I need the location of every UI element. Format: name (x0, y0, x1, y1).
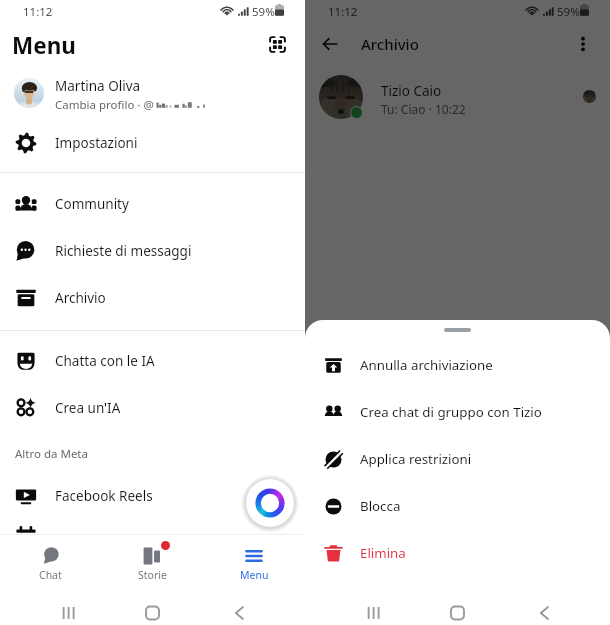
staticText: Crea chat di gruppo con Tizio (360, 403, 542, 421)
staticText: Crea un'IA (55, 399, 121, 417)
staticText: Community (55, 195, 129, 213)
staticText: Menu (12, 30, 76, 61)
staticText: 11:12 (23, 4, 53, 20)
button[interactable]: Scan QR code (264, 31, 291, 58)
button[interactable]: Meta AI (244, 477, 296, 529)
staticText: Annulla archiviazione (360, 356, 493, 374)
button[interactable]: Community (0, 187, 305, 221)
button[interactable]: Archivio (0, 281, 305, 315)
staticText: Chatta con le IA (55, 352, 155, 370)
button[interactable]: Menu (203, 535, 305, 592)
button[interactable]: Applica restrizioni (305, 441, 610, 477)
button[interactable]: Crea un'IA (0, 391, 305, 425)
staticText: Menu (240, 568, 269, 582)
button[interactable]: Crea chat di gruppo con Tizio (305, 394, 610, 430)
button[interactable]: Chatta con le IA (0, 344, 305, 378)
button[interactable]: Facebook Reels (0, 479, 305, 513)
staticText: Altro da Meta (15, 446, 88, 462)
staticText: Applica restrizioni (360, 450, 472, 468)
staticText: Facebook Reels (55, 487, 153, 505)
staticText: 11:12 (328, 4, 358, 20)
button[interactable]: Blocca (305, 488, 610, 524)
button[interactable]: More options (572, 33, 594, 55)
button[interactable]: Richieste di messaggi (0, 234, 305, 268)
staticText: Martina Oliva (55, 77, 141, 95)
staticText: Cambia profilo · @ (55, 97, 154, 112)
staticText: Impostazioni (55, 134, 138, 152)
button[interactable]: Chat (0, 535, 101, 592)
button[interactable] (305, 0, 610, 625)
staticText: Elimina (360, 544, 406, 562)
button[interactable]: Elimina (305, 535, 610, 571)
button[interactable]: Impostazioni (0, 126, 305, 160)
staticText: Archivio (361, 34, 419, 54)
button[interactable]: Back (321, 35, 339, 53)
staticText: Chat (39, 568, 62, 582)
staticText: 59% (252, 4, 275, 20)
staticText: Blocca (360, 497, 401, 515)
staticText: Storie (138, 568, 167, 582)
staticText: 59% (557, 4, 580, 20)
button[interactable]: Martina Oliva (0, 72, 305, 114)
button[interactable]: Annulla archiviazione (305, 347, 610, 383)
button[interactable]: Storie (101, 535, 203, 592)
staticText: Richieste di messaggi (55, 242, 192, 260)
staticText: Tizio Caio (381, 82, 442, 100)
staticText: Archivio (55, 289, 106, 307)
staticText: Tu: Ciao · 10:22 (381, 101, 466, 117)
button[interactable]: Tizio Caio (305, 66, 610, 128)
